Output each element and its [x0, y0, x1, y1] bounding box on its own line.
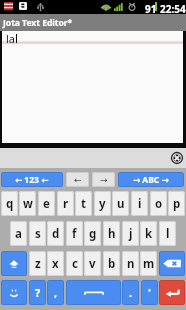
button[interactable]: → ABC → — [118, 172, 184, 187]
staticText: k — [145, 226, 153, 242]
staticText: . — [129, 285, 133, 300]
staticText: 22:54 — [160, 2, 186, 16]
staticText: ? — [35, 285, 41, 300]
staticText: x — [52, 256, 59, 272]
button[interactable]: a — [10, 221, 27, 246]
button[interactable]: , — [47, 280, 64, 305]
staticText: q — [6, 196, 14, 212]
staticText: s — [35, 226, 41, 242]
button[interactable]: Enter — [159, 280, 185, 305]
staticText: c — [72, 256, 78, 272]
button[interactable]: d — [47, 221, 64, 246]
staticText: g — [89, 226, 97, 242]
staticText: u — [117, 196, 125, 212]
button[interactable]: Shift — [1, 251, 27, 276]
staticText: → — [100, 175, 108, 185]
button[interactable]: . — [122, 280, 139, 305]
button[interactable]: q — [1, 191, 18, 216]
button[interactable]: m — [140, 251, 157, 276]
staticText: t — [81, 196, 86, 212]
button[interactable]: r — [57, 191, 74, 216]
staticText: a — [15, 226, 22, 242]
button[interactable]: n — [122, 251, 139, 276]
button[interactable]: u — [112, 191, 129, 216]
staticText: w — [23, 196, 33, 212]
button[interactable]: Space — [66, 280, 121, 305]
button[interactable]: x — [47, 251, 64, 276]
button[interactable]: ← 123 ← — [1, 172, 63, 187]
staticText: ← 123 ← — [15, 174, 49, 186]
staticText: f — [72, 226, 77, 242]
button[interactable]: s — [29, 221, 46, 246]
button[interactable]: Cursor right — [92, 172, 115, 187]
button[interactable]: o — [150, 191, 167, 216]
staticText: r — [63, 196, 69, 212]
staticText: Jota Text Editor* — [3, 17, 73, 29]
staticText: o — [155, 196, 163, 212]
button[interactable]: Emoji — [1, 280, 27, 305]
staticText: h — [108, 226, 116, 242]
button[interactable]: v — [84, 251, 101, 276]
button[interactable]: l — [159, 221, 176, 246]
staticText: la — [6, 31, 16, 46]
button[interactable]: e — [38, 191, 55, 216]
button[interactable]: Cursor left — [66, 172, 89, 187]
staticText: ← — [74, 175, 82, 185]
staticText: n — [127, 256, 135, 272]
button[interactable]: Backspace — [159, 251, 185, 276]
button[interactable]: f — [66, 221, 83, 246]
staticText: ' — [148, 285, 151, 300]
button[interactable]: z — [29, 251, 46, 276]
staticText: j — [129, 226, 133, 242]
button[interactable]: y — [94, 191, 111, 216]
staticText: b — [108, 256, 116, 272]
button[interactable]: la — [2, 31, 183, 143]
button[interactable]: ? — [29, 280, 46, 305]
button[interactable]: t — [75, 191, 92, 216]
button[interactable]: k — [140, 221, 157, 246]
button[interactable]: w — [19, 191, 36, 216]
button[interactable]: ' — [141, 280, 158, 305]
button[interactable]: p — [168, 191, 185, 216]
staticText: y — [99, 196, 106, 212]
staticText: i — [138, 196, 142, 212]
staticText: v — [89, 256, 96, 272]
button[interactable]: c — [66, 251, 83, 276]
button[interactable]: h — [103, 221, 120, 246]
staticText: z — [35, 256, 41, 272]
staticText: 91 — [145, 2, 157, 16]
staticText: l — [166, 226, 170, 242]
staticText: , — [54, 285, 58, 300]
button[interactable]: Hide keyboard — [171, 152, 183, 164]
staticText: m — [143, 256, 155, 272]
button[interactable]: b — [103, 251, 120, 276]
button[interactable]: i — [131, 191, 148, 216]
button[interactable]: j — [122, 221, 139, 246]
staticText: d — [52, 226, 60, 242]
staticText: e — [43, 196, 50, 212]
staticText: p — [173, 196, 181, 212]
staticText: → ABC → — [133, 174, 169, 186]
button[interactable]: g — [84, 221, 101, 246]
